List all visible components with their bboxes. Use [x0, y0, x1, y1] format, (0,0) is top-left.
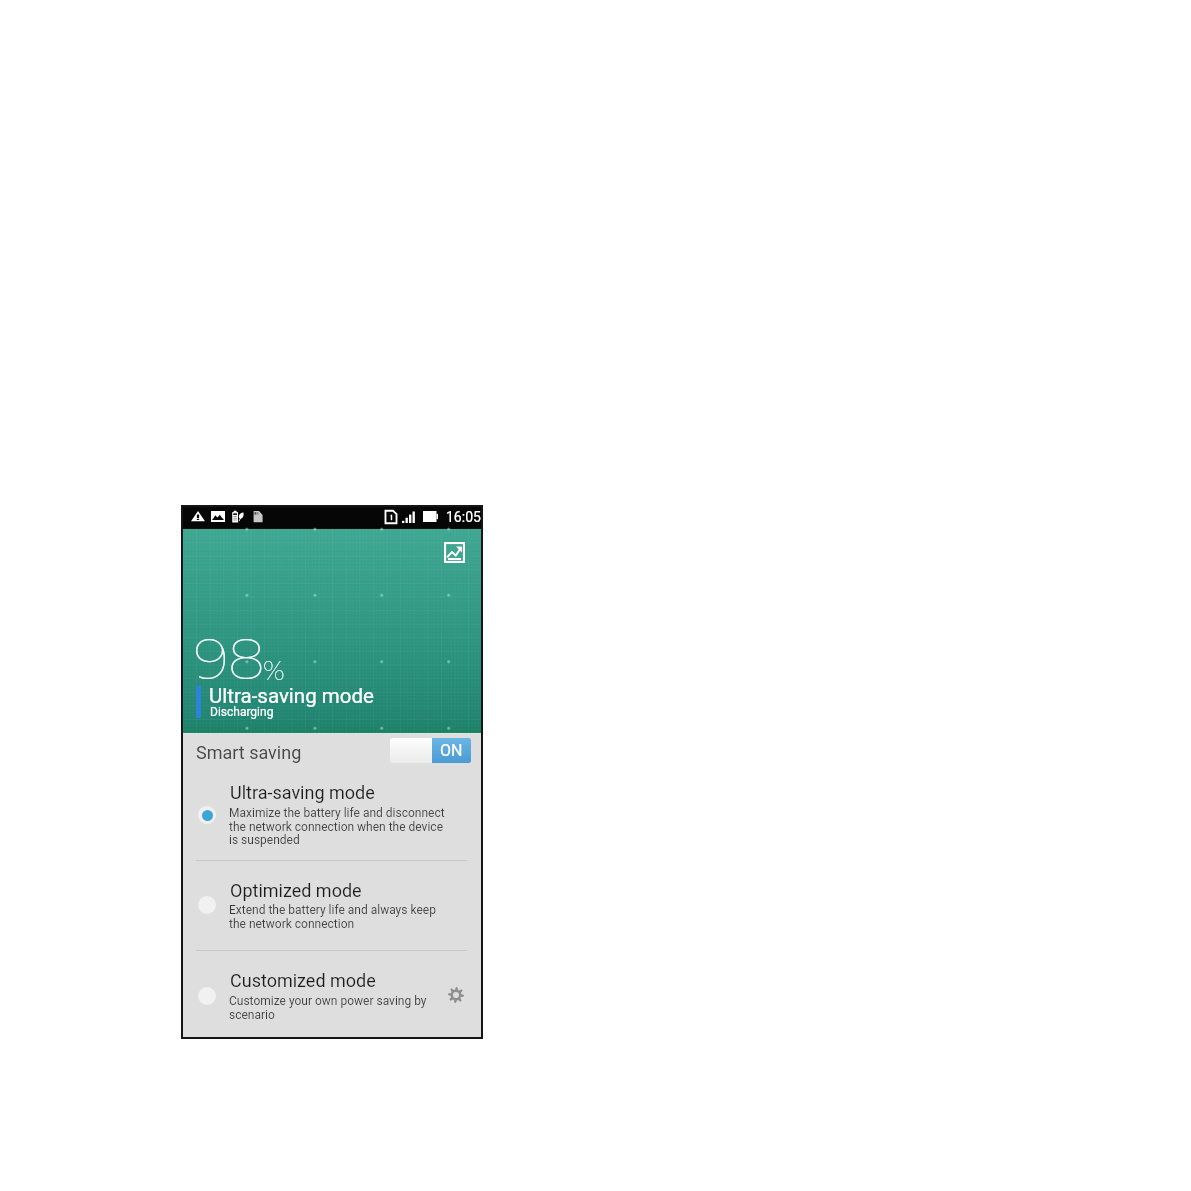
staticText: Smart saving: [196, 742, 302, 763]
button[interactable]: Ultra-saving mode: [183, 769, 481, 857]
staticText: 98: [194, 623, 265, 694]
staticText: %: [263, 654, 285, 687]
button[interactable]: Smart saving: [183, 733, 481, 766]
button[interactable]: Smart saving toggle, on: [390, 738, 471, 763]
staticText: Discharging: [210, 705, 274, 719]
button[interactable]: Customized mode settings: [448, 987, 464, 1003]
staticText: Optimized mode: [230, 880, 362, 901]
staticText: Customize your own power saving by scena…: [229, 994, 427, 1021]
staticText: 16:05: [446, 509, 481, 525]
button[interactable]: Optimized mode: [183, 865, 481, 947]
staticText: Maximize the battery life and disconnect…: [229, 806, 445, 846]
button[interactable]: Customized mode: [183, 955, 481, 1037]
staticText: ON: [440, 741, 463, 760]
staticText: Extend the battery life and always keep …: [229, 903, 436, 930]
button[interactable]: Battery usage history: [444, 542, 465, 563]
staticText: Customized mode: [230, 970, 376, 991]
staticText: Ultra-saving mode: [230, 782, 375, 803]
staticText: Ultra-saving mode: [209, 684, 374, 708]
